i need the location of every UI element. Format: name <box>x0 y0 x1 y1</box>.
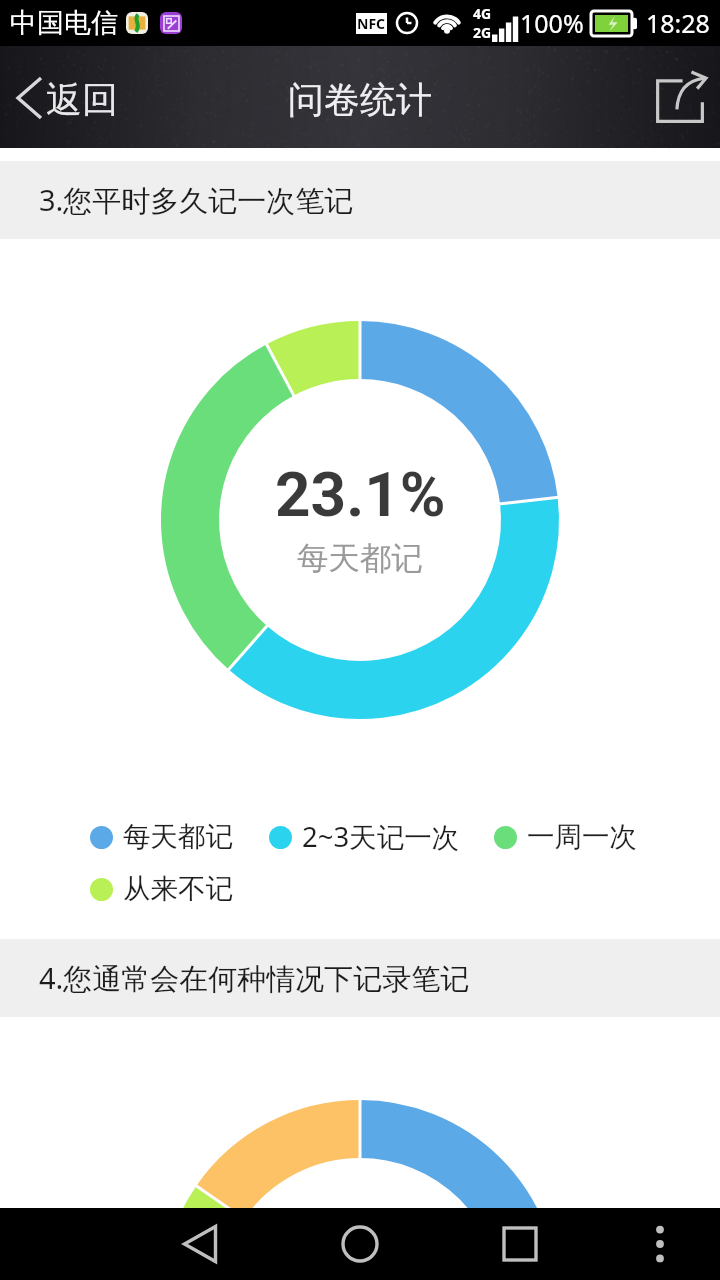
button[interactable]: 3.您平时多久记一次笔记 <box>0 161 720 239</box>
staticText: 3.您平时多久记一次笔记 <box>39 180 354 220</box>
staticText: 从来不记 <box>123 872 233 907</box>
button[interactable]: Back <box>164 1208 236 1280</box>
staticText: 4.您通常会在何种情况下记录笔记 <box>39 958 470 998</box>
button[interactable]: 4.您通常会在何种情况下记录笔记 <box>0 939 720 1017</box>
staticText: 每天都记 <box>123 820 233 855</box>
staticText: 4G <box>473 4 492 23</box>
button[interactable]: 2~3天记一次 <box>269 818 460 856</box>
button[interactable]: Home <box>324 1208 396 1280</box>
button[interactable]: 一周一次 <box>494 820 637 855</box>
staticText: 23.1% <box>275 458 446 531</box>
button[interactable]: 每天都记 <box>90 820 233 855</box>
button[interactable]: Recents <box>484 1208 556 1280</box>
staticText: 问卷统计 <box>288 77 432 122</box>
button[interactable]: 返回 <box>16 75 136 120</box>
staticText: NFC <box>357 14 386 33</box>
staticText: 2~3天记一次 <box>302 818 460 856</box>
staticText: 每天都记 <box>297 539 423 579</box>
staticText: 一周一次 <box>527 820 637 855</box>
button[interactable]: Share <box>645 62 715 132</box>
staticText: 中国电信 <box>10 6 118 40</box>
button[interactable]: Menu <box>624 1208 696 1280</box>
staticText: 2G <box>473 23 492 42</box>
staticText: 100% <box>520 6 584 40</box>
staticText: 返回 <box>46 77 118 122</box>
button[interactable]: 从来不记 <box>90 872 233 907</box>
staticText: 18:28 <box>646 6 710 40</box>
